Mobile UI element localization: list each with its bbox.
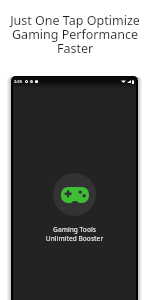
- staticText: 2:35: [14, 79, 22, 84]
- staticText: Gaming Tools Unlimited Booster: [13, 225, 136, 243]
- staticText: Just One Tap Optimize Gaming Performance…: [0, 12, 150, 57]
- button[interactable]: Boost gaming performance: [53, 173, 96, 216]
